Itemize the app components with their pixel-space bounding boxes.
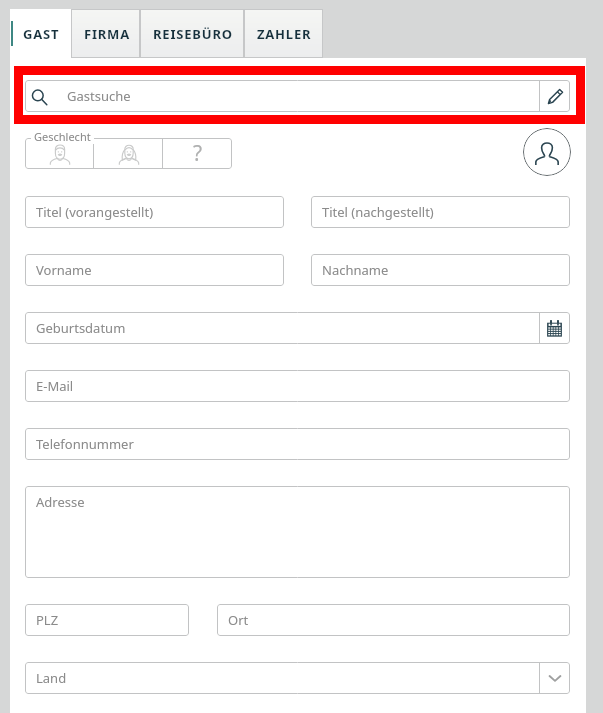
button[interactable]: E-Mail xyxy=(25,370,570,402)
button[interactable]: Gastsuche xyxy=(25,80,570,112)
button[interactable] xyxy=(94,138,163,169)
staticText: REISEBÜRO xyxy=(153,25,233,43)
staticText: Titel (nachgestellt) xyxy=(322,203,434,221)
button[interactable]: FIRMA xyxy=(71,9,140,58)
button[interactable]: Geschlecht xyxy=(34,129,91,144)
staticText: Gastsuche xyxy=(67,87,131,105)
staticText: E-Mail xyxy=(36,377,74,395)
button[interactable]: Geburtsdatum xyxy=(25,312,570,344)
staticText: PLZ xyxy=(36,611,59,629)
button[interactable]: GAST xyxy=(10,9,71,59)
staticText: Vorname xyxy=(36,261,92,279)
button[interactable]: Land auswählen xyxy=(539,662,570,694)
button[interactable]: Ort xyxy=(217,604,570,636)
staticText: FIRMA xyxy=(84,25,130,43)
button[interactable]: Telefonnummer xyxy=(25,428,570,460)
button[interactable]: Nachname xyxy=(311,254,570,286)
button[interactable]: Datum wählen xyxy=(539,312,570,344)
staticText: Geschlecht xyxy=(34,129,91,144)
button[interactable] xyxy=(25,138,94,169)
staticText: Telefonnummer xyxy=(36,435,134,453)
button[interactable]: Adresse xyxy=(25,486,570,578)
staticText: Titel (vorangestellt) xyxy=(36,203,154,221)
staticText: Adresse xyxy=(36,493,85,511)
staticText: ZAHLER xyxy=(257,25,312,43)
button[interactable]: ZAHLER xyxy=(244,9,323,58)
staticText: Nachname xyxy=(322,261,389,279)
button[interactable]: Vorname xyxy=(25,254,284,286)
staticText: GAST xyxy=(23,25,60,43)
button[interactable]: PLZ xyxy=(25,604,189,636)
button[interactable]: REISEBÜRO xyxy=(140,9,244,58)
staticText: ? xyxy=(193,139,203,168)
button[interactable]: Profilbild xyxy=(523,128,571,176)
button[interactable]: Titel (vorangestellt) xyxy=(25,196,284,228)
button[interactable]: Land xyxy=(25,662,570,694)
staticText: Ort xyxy=(228,611,249,629)
button[interactable]: Bearbeiten xyxy=(539,80,570,112)
staticText: Geburtsdatum xyxy=(36,319,126,337)
button[interactable]: Titel (nachgestellt) xyxy=(311,196,570,228)
staticText: Land xyxy=(36,669,67,687)
button[interactable]: ? xyxy=(163,138,232,169)
